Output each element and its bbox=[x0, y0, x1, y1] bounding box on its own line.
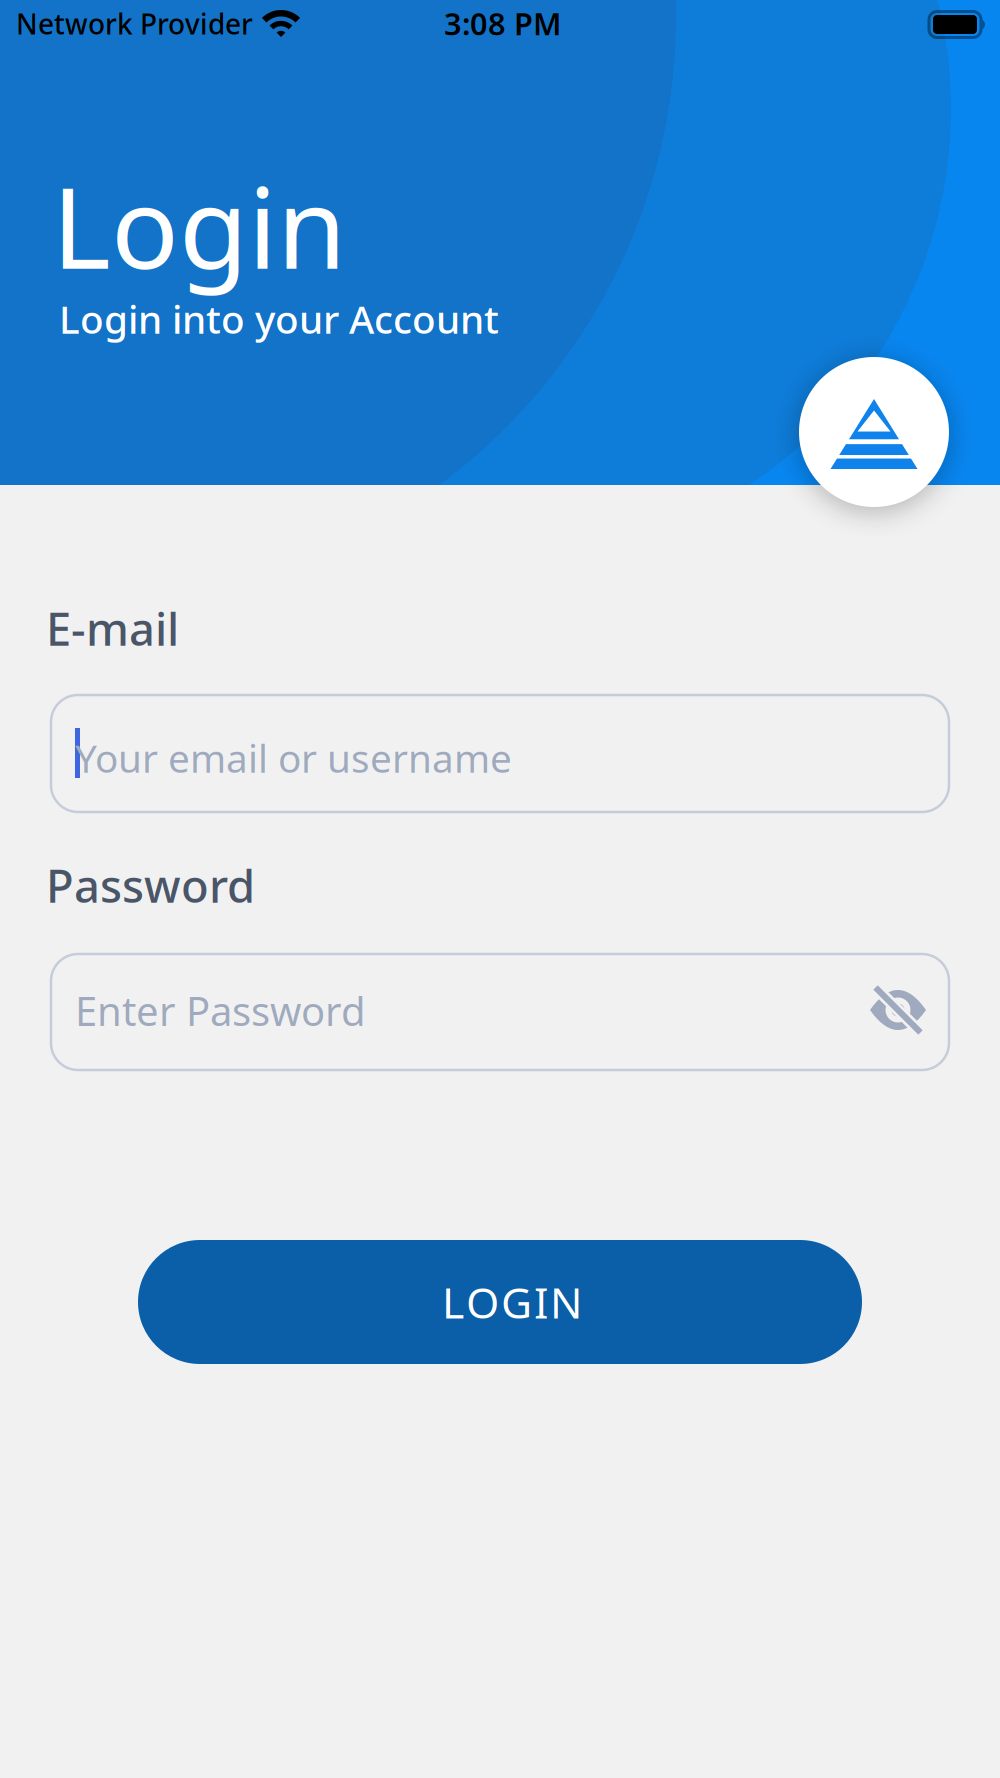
staticText: E-mail bbox=[46, 598, 179, 658]
button[interactable]: Show password bbox=[870, 987, 926, 1033]
staticText: 3:08 PM bbox=[444, 3, 561, 44]
button[interactable]: Password, enter password bbox=[51, 954, 949, 1070]
staticText: Your email or username bbox=[75, 732, 512, 783]
button[interactable]: LOGIN bbox=[138, 1240, 862, 1364]
staticText: Login bbox=[52, 151, 346, 300]
button[interactable]: E-mail, your email or username bbox=[51, 695, 949, 812]
staticText: Password bbox=[46, 855, 255, 915]
staticText: LOGIN bbox=[442, 1274, 582, 1330]
staticText: Login into your Account bbox=[59, 293, 499, 344]
staticText: Network Provider bbox=[16, 5, 253, 42]
staticText: Enter Password bbox=[75, 984, 366, 1037]
